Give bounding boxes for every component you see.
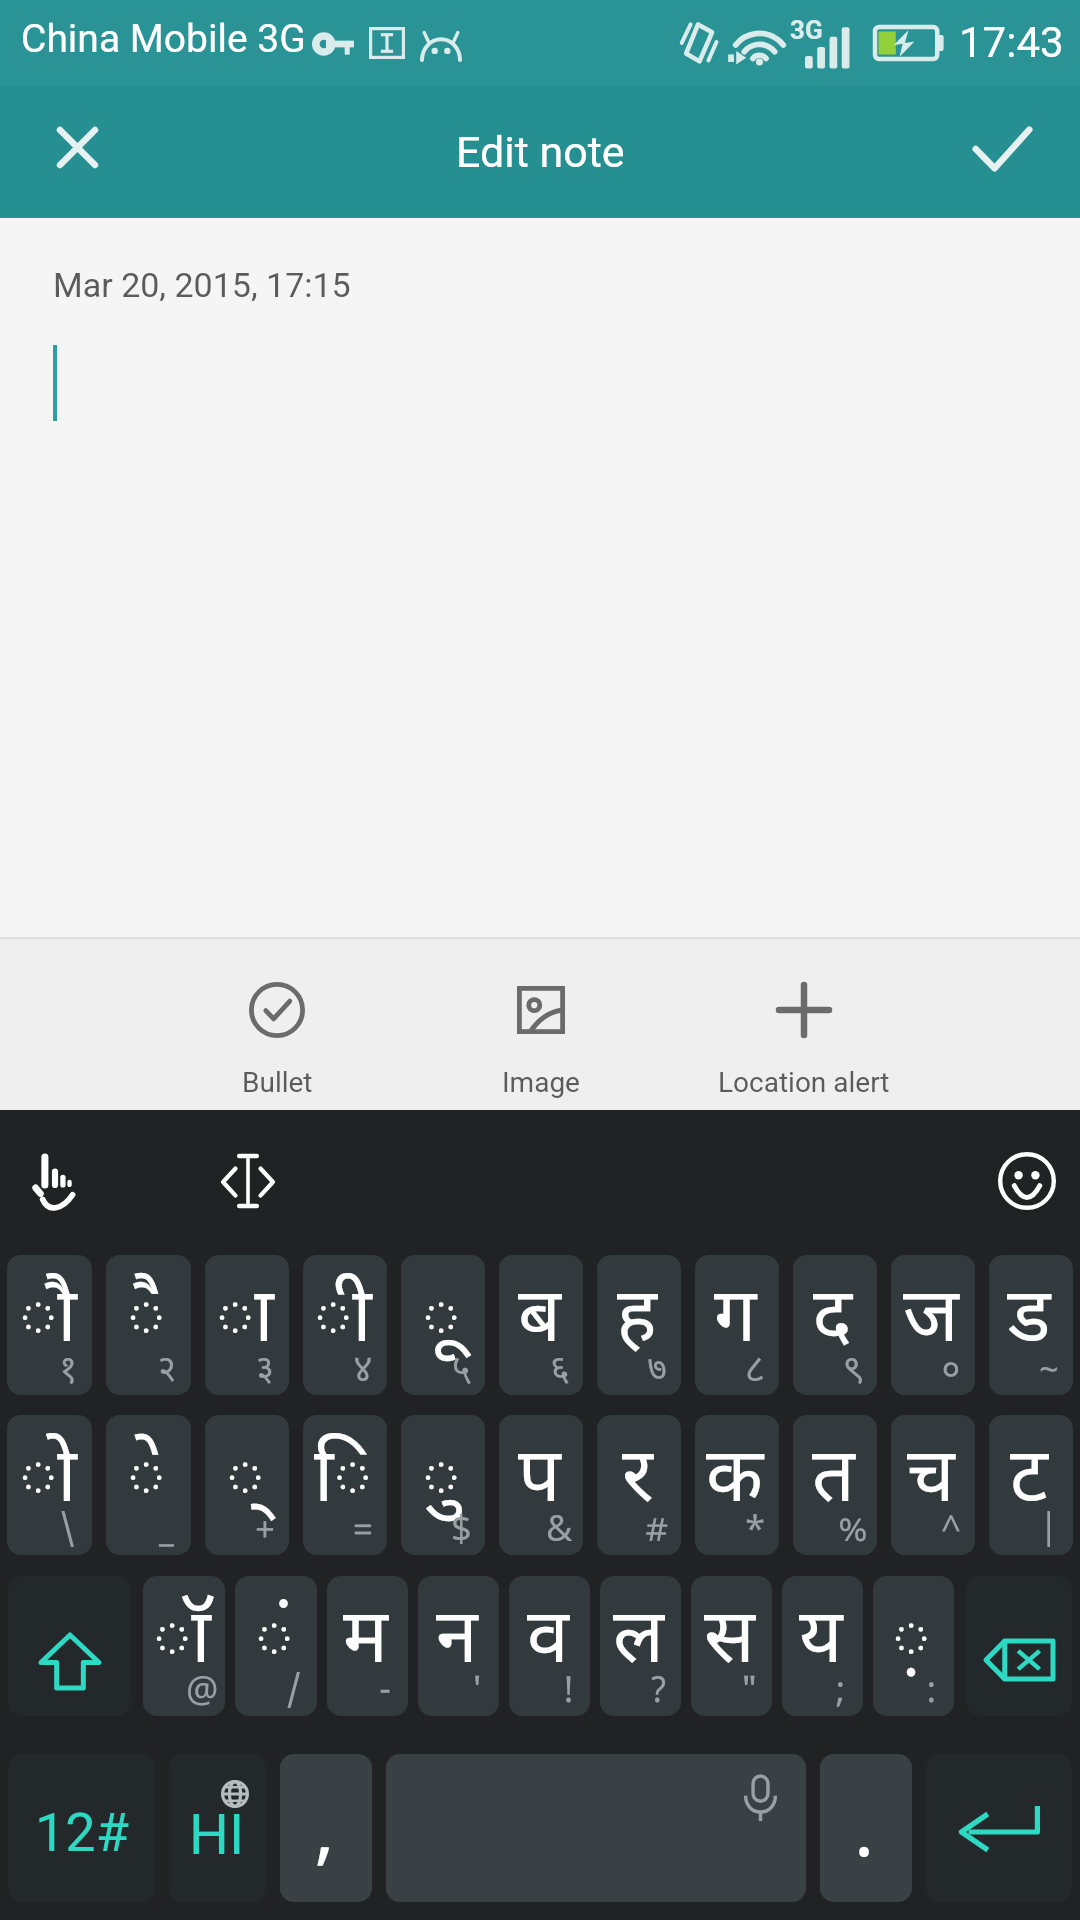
button[interactable]: ट <box>989 1415 1073 1555</box>
staticText: स <box>704 1582 755 1684</box>
button[interactable]: ो <box>7 1415 92 1555</box>
button[interactable]: ु <box>401 1415 485 1555</box>
button[interactable]: Enter <box>926 1754 1072 1902</box>
button[interactable]: Image <box>409 939 672 1110</box>
staticText: HI <box>189 1802 245 1868</box>
staticText: = <box>353 1503 373 1552</box>
button[interactable]: , <box>280 1754 372 1902</box>
staticText: ? <box>649 1664 668 1713</box>
staticText: क <box>706 1421 764 1523</box>
staticText: ौ <box>19 1261 77 1363</box>
staticText: Bullet <box>242 1066 313 1099</box>
staticText: ् <box>226 1421 265 1523</box>
staticText: / <box>286 1664 302 1713</box>
staticText: ! <box>561 1664 575 1713</box>
staticText: ० <box>941 1343 961 1392</box>
button[interactable]: म <box>327 1576 408 1716</box>
staticText: ८ <box>745 1343 765 1392</box>
button[interactable]: क <box>695 1415 779 1555</box>
button[interactable]: ौ <box>7 1255 92 1395</box>
button[interactable]: Discard note <box>33 108 121 196</box>
staticText: २ <box>157 1343 177 1392</box>
button[interactable]: ् <box>205 1415 289 1555</box>
button[interactable]: Emoji <box>984 1138 1070 1224</box>
button[interactable]: ै <box>106 1255 191 1395</box>
button[interactable]: Backspace <box>966 1576 1072 1716</box>
button[interactable]: ि <box>303 1415 387 1555</box>
button[interactable]: ॉ <box>143 1576 225 1716</box>
staticText: - <box>379 1664 392 1713</box>
staticText: ं <box>255 1582 294 1684</box>
button[interactable]: न <box>418 1576 499 1716</box>
button[interactable]: Shift <box>8 1576 131 1716</box>
button[interactable]: स <box>691 1576 772 1716</box>
staticText: @ <box>186 1664 219 1713</box>
staticText: Mar 20, 2015, 17:15 <box>53 265 351 305</box>
button[interactable]: ल <box>600 1576 681 1716</box>
staticText: * <box>744 1503 766 1552</box>
staticText: ७ <box>647 1343 667 1392</box>
button[interactable]: य <box>782 1576 863 1716</box>
staticText: ़ <box>892 1582 931 1684</box>
button[interactable]: े <box>106 1415 191 1555</box>
button[interactable]: प <box>499 1415 583 1555</box>
button[interactable]: ब <box>499 1255 583 1395</box>
staticText: म <box>343 1582 388 1684</box>
button[interactable]: च <box>891 1415 975 1555</box>
staticText: ज <box>903 1261 959 1363</box>
button[interactable]: र <box>597 1415 681 1555</box>
button[interactable]: Location alert <box>672 939 935 1110</box>
staticText: व <box>527 1582 569 1684</box>
staticText: $ <box>451 1503 472 1552</box>
staticText: 3G <box>790 15 823 45</box>
button[interactable]: ह <box>597 1255 681 1395</box>
button[interactable]: ा <box>205 1255 289 1395</box>
staticText: र <box>622 1421 653 1523</box>
button[interactable]: Bullet <box>145 939 409 1110</box>
staticText: ट <box>1010 1421 1048 1523</box>
button[interactable]: द <box>793 1255 877 1395</box>
button[interactable]: Handwriting input <box>12 1139 98 1225</box>
staticText: ो <box>19 1421 77 1523</box>
staticText: + <box>255 1503 275 1552</box>
button[interactable]: ू <box>401 1255 485 1395</box>
staticText: Location alert <box>718 1066 890 1099</box>
staticText: य <box>799 1582 843 1684</box>
staticText: ु <box>422 1421 461 1523</box>
staticText: े <box>127 1421 166 1523</box>
staticText: | <box>1039 1503 1059 1552</box>
button[interactable]: ज <box>891 1255 975 1395</box>
staticText: 17:43 <box>959 18 1064 67</box>
staticText: ि <box>314 1421 372 1523</box>
button[interactable]: ड <box>989 1255 1073 1395</box>
staticText: \ <box>60 1503 76 1552</box>
staticText: Edit note <box>456 127 625 177</box>
button[interactable]: Move cursor <box>205 1138 291 1224</box>
staticText: ै <box>127 1261 166 1363</box>
button[interactable]: त <box>793 1415 877 1555</box>
staticText: प <box>518 1421 561 1523</box>
staticText: ग <box>714 1261 757 1363</box>
button[interactable]: ग <box>695 1255 779 1395</box>
staticText: ३ <box>255 1343 275 1392</box>
staticText: China Mobile 3G <box>21 16 306 62</box>
staticText: ^ <box>941 1503 961 1552</box>
staticText: . <box>854 1776 875 1878</box>
staticText: ॉ <box>153 1582 211 1684</box>
button[interactable]: ़ <box>873 1576 954 1716</box>
staticText: ू <box>422 1261 461 1363</box>
button[interactable]: 12# <box>8 1754 155 1902</box>
staticText: & <box>546 1503 573 1552</box>
button[interactable]: Space <box>386 1754 806 1902</box>
staticText: : <box>926 1664 937 1713</box>
button[interactable]: ी <box>303 1255 387 1395</box>
staticText: च <box>907 1421 955 1523</box>
button[interactable]: Save note <box>958 108 1046 196</box>
button[interactable]: Change language <box>169 1754 266 1902</box>
staticText: ी <box>314 1261 372 1363</box>
staticText: % <box>838 1503 868 1552</box>
staticText: ; <box>835 1664 846 1713</box>
button[interactable]: ं <box>235 1576 317 1716</box>
button[interactable]: व <box>509 1576 590 1716</box>
button[interactable]: . <box>820 1754 912 1902</box>
